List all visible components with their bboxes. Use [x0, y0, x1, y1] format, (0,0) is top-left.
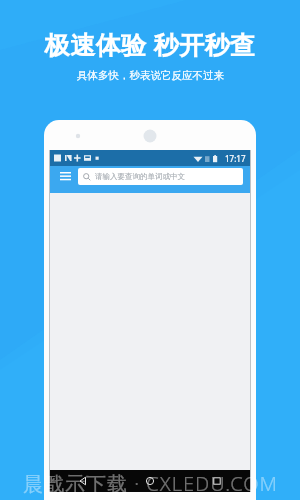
button[interactable]: Home — [116, 470, 183, 492]
staticText: 晨戬示下载 · CXLEDU.COM — [23, 470, 278, 497]
button[interactable]: Recent apps — [183, 470, 250, 492]
staticText: 17:17 — [225, 153, 246, 164]
button[interactable]: Back — [50, 470, 116, 492]
staticText: 请输入要查询的单词或中文 — [95, 172, 185, 181]
staticText: 具体多快，秒表说它反应不过来 — [77, 69, 224, 82]
button[interactable]: Menu — [55, 166, 75, 186]
button[interactable]: 请输入要查询的单词或中文 — [78, 168, 243, 185]
staticText: 极速体验 秒开秒查 — [44, 27, 256, 61]
